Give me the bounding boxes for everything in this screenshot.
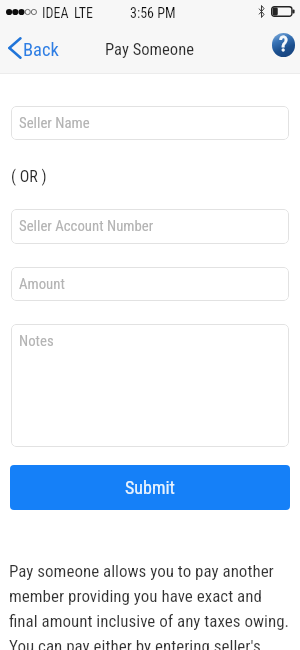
button[interactable]: Seller Name bbox=[11, 106, 289, 140]
staticText: Seller Account Number bbox=[19, 217, 154, 234]
staticText: ( OR ) bbox=[11, 167, 47, 186]
staticText: Pay someone allows you to pay another me… bbox=[9, 561, 297, 650]
button[interactable]: Amount bbox=[11, 267, 289, 301]
staticText: Amount bbox=[19, 275, 65, 292]
staticText: LTE bbox=[74, 5, 94, 21]
button[interactable]: Submit bbox=[10, 465, 290, 510]
other: Battery bbox=[271, 6, 295, 17]
staticText: IDEA bbox=[42, 5, 69, 21]
staticText: Submit bbox=[125, 477, 175, 498]
button[interactable]: Notes bbox=[11, 324, 289, 447]
button[interactable]: Help bbox=[272, 33, 295, 57]
staticText: Seller Name bbox=[19, 114, 90, 131]
staticText: ? bbox=[279, 33, 288, 56]
other: Bluetooth bbox=[259, 5, 264, 18]
staticText: Notes bbox=[19, 332, 54, 349]
staticText: 3:56 PM bbox=[130, 5, 176, 21]
button[interactable]: Back bbox=[8, 30, 59, 66]
button[interactable]: Seller Account Number bbox=[11, 209, 289, 244]
staticText: Pay Someone bbox=[105, 40, 195, 59]
staticText: Back bbox=[23, 39, 59, 61]
